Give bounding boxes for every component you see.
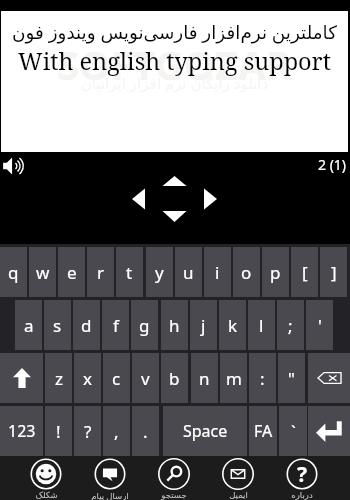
staticText: ] bbox=[331, 261, 337, 284]
button[interactable]: s bbox=[44, 300, 71, 350]
staticText: 123 bbox=[8, 420, 36, 442]
button[interactable]: v bbox=[132, 353, 159, 403]
button[interactable]: f bbox=[102, 300, 129, 350]
button[interactable]: n bbox=[191, 353, 218, 403]
staticText: n bbox=[199, 367, 210, 390]
button[interactable]: Email bbox=[208, 456, 268, 500]
staticText: ? bbox=[84, 420, 92, 443]
button[interactable]: p bbox=[262, 247, 289, 297]
button[interactable]: Emoji bbox=[16, 456, 76, 500]
button[interactable]: c bbox=[103, 353, 130, 403]
staticText: g bbox=[139, 314, 150, 337]
staticText: ! bbox=[56, 420, 61, 443]
button[interactable]: t bbox=[116, 247, 143, 297]
staticText: k bbox=[228, 314, 238, 337]
staticText: 2 (1) bbox=[318, 155, 347, 174]
button[interactable]: ] bbox=[320, 247, 347, 297]
staticText: i bbox=[215, 261, 220, 284]
staticText: j bbox=[201, 314, 206, 337]
button[interactable]: Space bbox=[163, 406, 247, 456]
staticText: FA bbox=[254, 420, 273, 442]
staticText: h bbox=[169, 314, 180, 337]
button[interactable]: r bbox=[87, 247, 114, 297]
staticText: f bbox=[113, 314, 119, 337]
staticText: ارسال پیام bbox=[91, 490, 129, 500]
button[interactable]: w bbox=[29, 247, 56, 297]
button[interactable]: Volume bbox=[2, 156, 30, 176]
button[interactable]: q bbox=[0, 247, 27, 297]
staticText: With english typing support bbox=[1, 45, 348, 77]
button[interactable]: e bbox=[58, 247, 85, 297]
staticText: ; bbox=[288, 314, 293, 337]
staticText: r bbox=[97, 261, 105, 284]
button[interactable]: m bbox=[220, 353, 247, 403]
button[interactable]: : bbox=[249, 353, 276, 403]
staticText: b bbox=[169, 367, 180, 390]
staticText: e bbox=[67, 261, 77, 284]
staticText: v bbox=[141, 367, 150, 390]
staticText: Space bbox=[183, 420, 228, 442]
staticText: s bbox=[53, 314, 62, 337]
staticText: [ bbox=[302, 261, 308, 284]
button[interactable]: x bbox=[74, 353, 101, 403]
button[interactable]: About bbox=[272, 456, 332, 500]
button[interactable]: " bbox=[278, 353, 305, 403]
staticText: " bbox=[288, 367, 295, 390]
staticText: ' bbox=[318, 314, 322, 337]
button[interactable]: ; bbox=[277, 300, 304, 350]
staticText: ? bbox=[297, 460, 308, 489]
staticText: SOFTGOZAR bbox=[1, 37, 348, 91]
button[interactable]: Search bbox=[144, 456, 204, 500]
button[interactable]: a bbox=[15, 300, 42, 350]
button[interactable]: ! bbox=[45, 406, 72, 456]
button[interactable]: ? bbox=[74, 406, 101, 456]
staticText: جستجو bbox=[161, 490, 187, 500]
staticText: q bbox=[8, 261, 19, 284]
staticText: l bbox=[259, 314, 264, 337]
staticText: درباره bbox=[291, 490, 313, 500]
button[interactable]: FA bbox=[249, 406, 277, 456]
button[interactable]: j bbox=[190, 300, 217, 350]
staticText: , bbox=[114, 420, 119, 443]
button[interactable]: ` bbox=[279, 406, 307, 456]
staticText: a bbox=[24, 314, 34, 337]
staticText: c bbox=[112, 367, 121, 390]
staticText: y bbox=[155, 261, 164, 284]
button[interactable]: z bbox=[45, 353, 72, 403]
staticText: : bbox=[260, 367, 265, 390]
button[interactable]: d bbox=[73, 300, 100, 350]
button[interactable]: [ bbox=[291, 247, 318, 297]
button[interactable]: Shift bbox=[0, 353, 43, 403]
button[interactable]: l bbox=[248, 300, 275, 350]
staticText: کاملترین نرم‌افزار فارسی‌نویس ویندوز فون bbox=[1, 19, 348, 44]
button[interactable]: Backspace bbox=[308, 353, 350, 403]
staticText: u bbox=[183, 261, 194, 284]
button[interactable]: h bbox=[161, 300, 188, 350]
staticText: z bbox=[55, 367, 63, 390]
button[interactable]: g bbox=[131, 300, 158, 350]
button[interactable]: u bbox=[175, 247, 202, 297]
button[interactable]: Enter bbox=[308, 406, 350, 456]
button[interactable]: i bbox=[204, 247, 231, 297]
button[interactable]: b bbox=[161, 353, 188, 403]
staticText: ایمیل bbox=[229, 490, 248, 500]
staticText: o bbox=[241, 261, 252, 284]
button[interactable]: 123 bbox=[0, 406, 43, 456]
staticText: ` bbox=[291, 420, 296, 443]
staticText: شکلک bbox=[35, 490, 58, 500]
button[interactable]: o bbox=[233, 247, 260, 297]
staticText: d bbox=[81, 314, 92, 337]
staticText: t bbox=[126, 261, 133, 284]
staticText: p bbox=[270, 261, 281, 284]
staticText: . bbox=[143, 420, 148, 443]
button[interactable]: ' bbox=[306, 300, 333, 350]
button[interactable]: , bbox=[103, 406, 130, 456]
staticText: w bbox=[36, 261, 50, 284]
button[interactable]: Send message bbox=[80, 456, 140, 500]
staticText: m bbox=[226, 367, 242, 390]
staticText: دانلود رایگان نرم افزار ایرانیان bbox=[1, 73, 348, 93]
staticText: x bbox=[83, 367, 92, 390]
button[interactable]: . bbox=[132, 406, 159, 456]
button[interactable]: y bbox=[146, 247, 173, 297]
button[interactable]: k bbox=[219, 300, 246, 350]
